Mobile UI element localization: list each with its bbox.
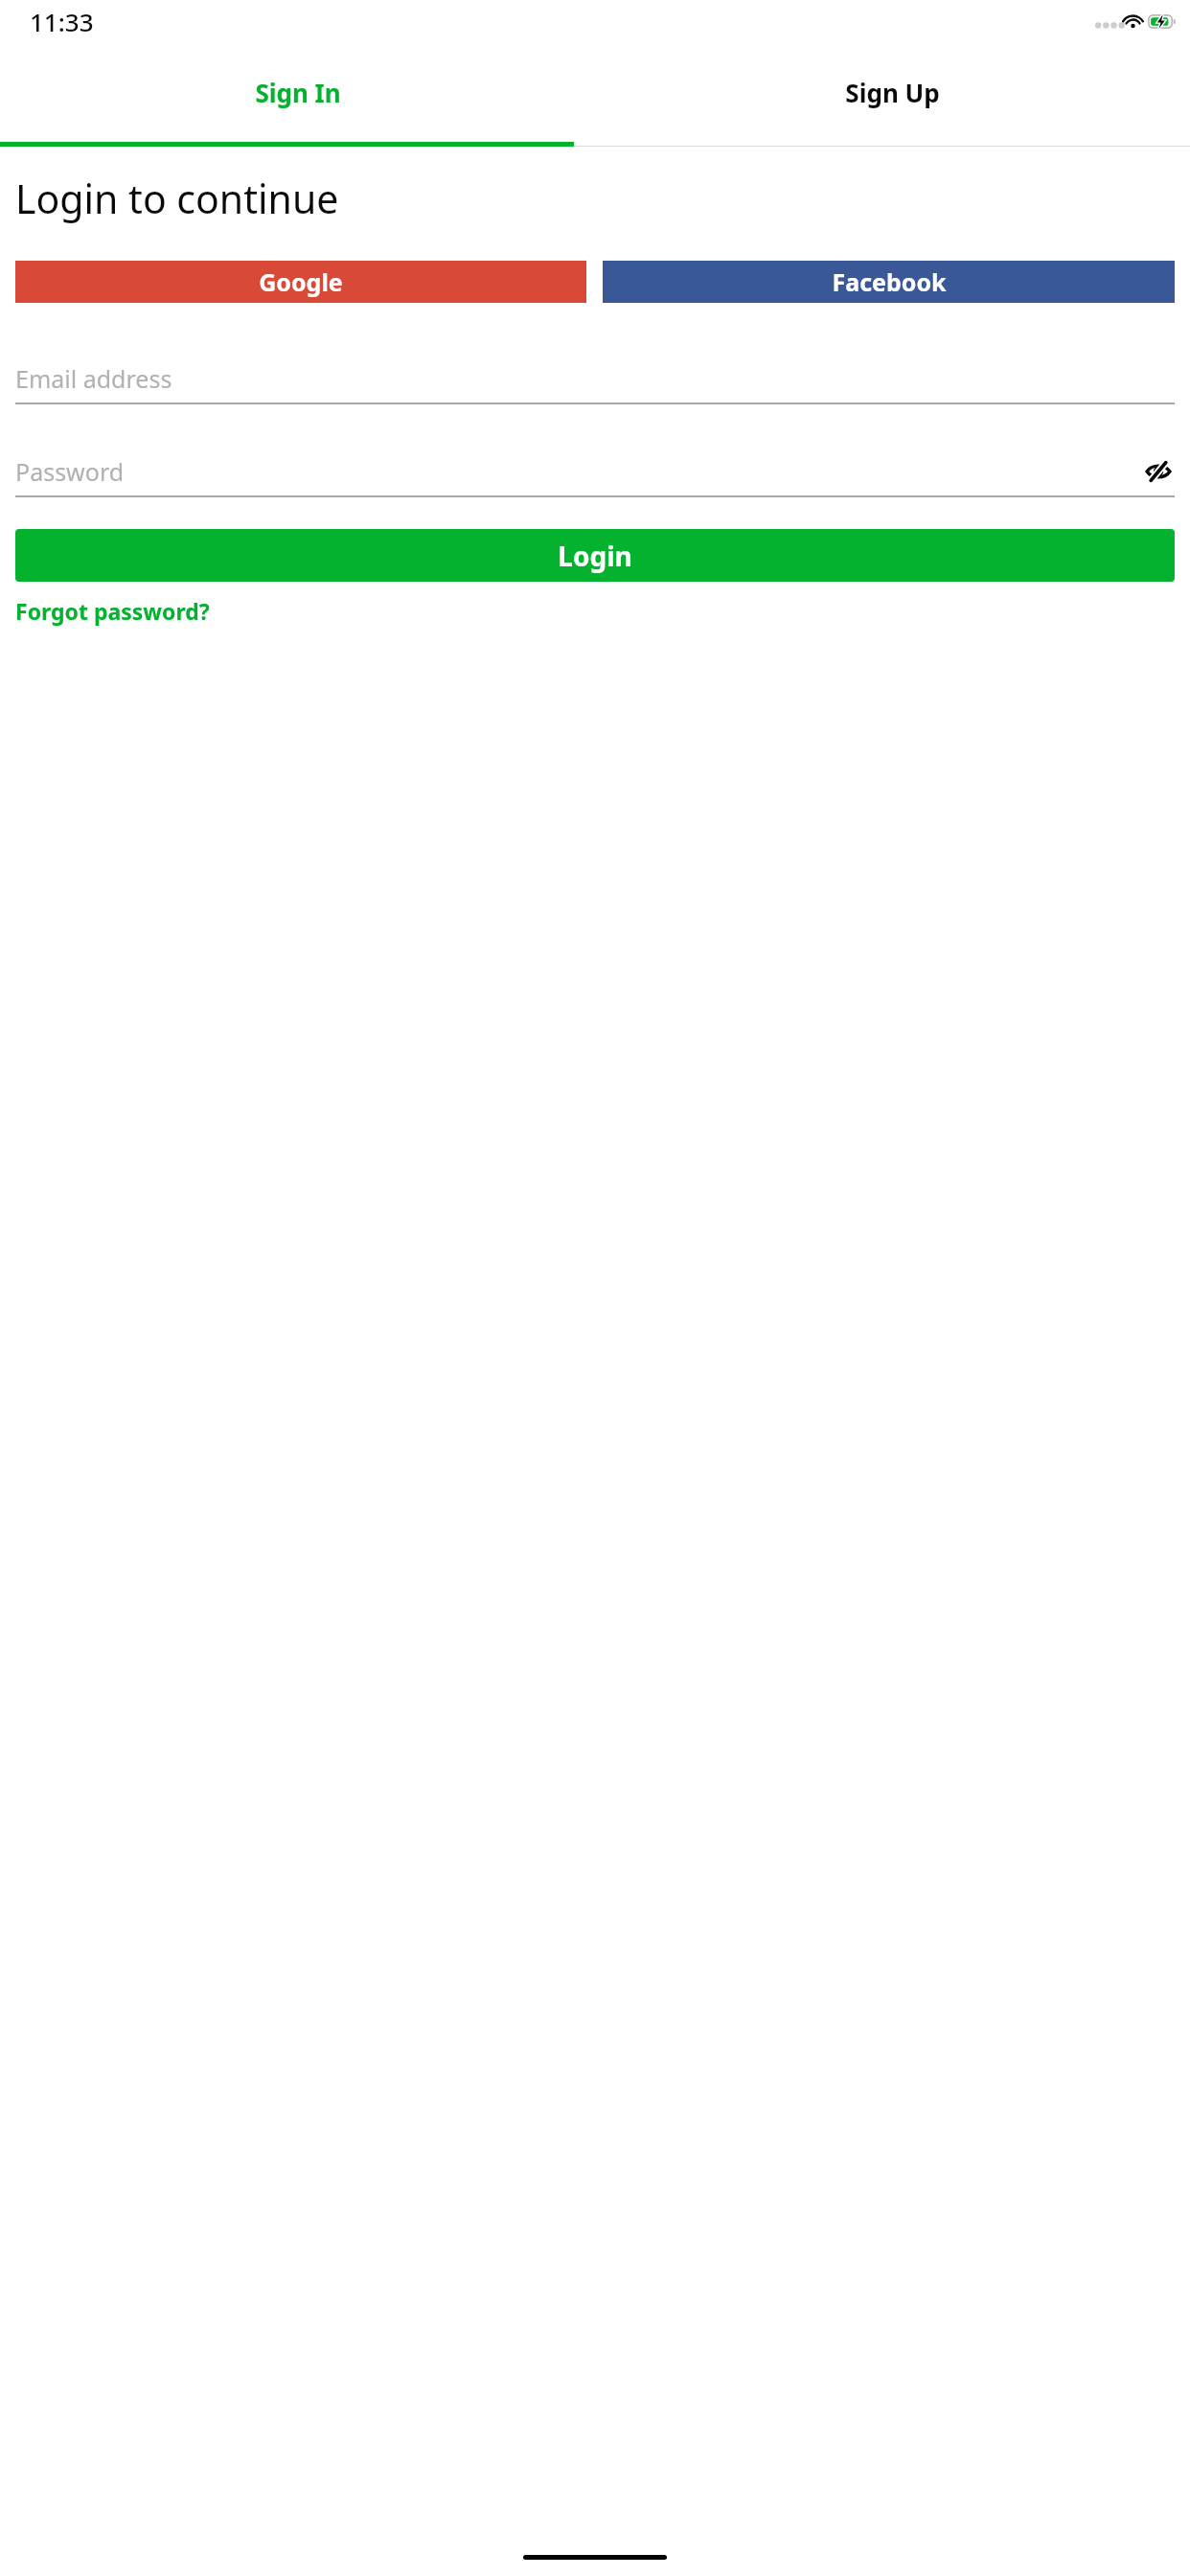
button[interactable]: Show password xyxy=(1142,455,1175,488)
button[interactable]: Login xyxy=(15,529,1175,582)
button[interactable]: Forgot password? xyxy=(15,591,210,631)
staticText: Google xyxy=(259,265,343,298)
button[interactable]: Google xyxy=(15,261,586,303)
staticText: Password xyxy=(15,455,125,488)
button[interactable]: Facebook xyxy=(603,261,1175,303)
staticText: 11:33 xyxy=(30,5,94,38)
staticText: Login to continue xyxy=(15,172,339,225)
staticText: Forgot password? xyxy=(15,596,210,626)
button[interactable]: Sign In xyxy=(0,42,595,142)
staticText: Email address xyxy=(15,362,172,395)
staticText: Login xyxy=(558,538,632,574)
staticText: Sign Up xyxy=(845,76,940,109)
staticText: Sign In xyxy=(255,76,341,109)
button[interactable]: Sign Up xyxy=(595,42,1190,142)
staticText: Facebook xyxy=(832,265,947,298)
